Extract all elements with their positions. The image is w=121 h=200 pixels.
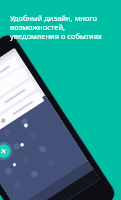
other: App screenshot preview xyxy=(0,0,121,200)
staticText: Удобный дизайн, много возможностей, увед… xyxy=(10,13,102,42)
